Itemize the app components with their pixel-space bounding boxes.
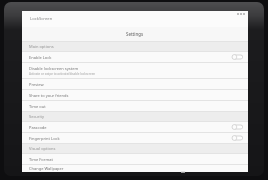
button[interactable]: Toggle bbox=[232, 135, 243, 141]
staticText: Share to your friends bbox=[29, 93, 69, 98]
button[interactable]: Passcode bbox=[22, 122, 248, 132]
staticText: Passcode bbox=[29, 125, 47, 130]
button[interactable]: Disable lockscreen system bbox=[22, 63, 248, 78]
staticText: Disable lockscreen system bbox=[29, 66, 79, 71]
staticText: Activate or swipe to activate/disable lo… bbox=[29, 72, 96, 76]
staticText: Settings bbox=[126, 31, 144, 37]
staticText: Preview bbox=[29, 82, 44, 87]
staticText: Visual options bbox=[29, 146, 56, 151]
staticText: Time out bbox=[29, 104, 46, 109]
staticText: Change Wallpaper bbox=[29, 166, 64, 171]
staticText: Main options bbox=[29, 44, 54, 49]
staticText: Time Format bbox=[29, 157, 53, 162]
button[interactable]: Toggle bbox=[232, 54, 243, 60]
button[interactable]: Toggle bbox=[232, 124, 243, 130]
button[interactable]: Time out bbox=[22, 101, 248, 111]
staticText: Enable Lock bbox=[29, 55, 52, 60]
button[interactable]: Preview bbox=[22, 79, 248, 89]
button[interactable]: Time Format bbox=[22, 154, 248, 164]
button[interactable]: Enable Lock bbox=[22, 52, 248, 62]
button[interactable]: Fingerprint Lock bbox=[22, 133, 248, 143]
button[interactable]: Change Wallpaper bbox=[22, 165, 248, 172]
staticText: LockScreen bbox=[30, 16, 53, 22]
button[interactable]: Share to your friends bbox=[22, 90, 248, 100]
staticText: Security bbox=[29, 114, 45, 119]
staticText: Fingerprint Lock bbox=[29, 136, 60, 141]
